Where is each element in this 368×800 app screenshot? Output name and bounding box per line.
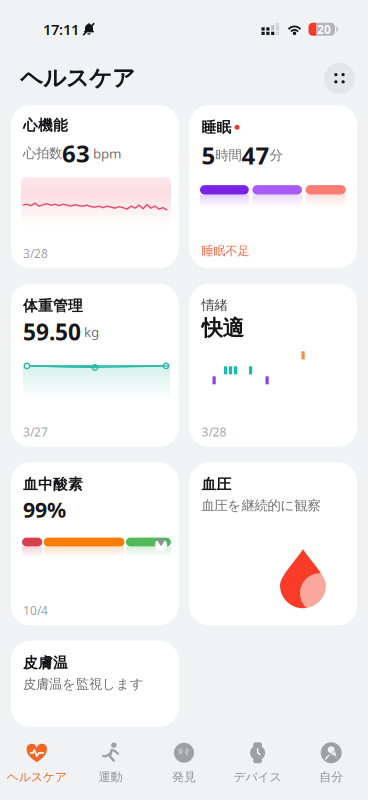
button[interactable]: 情緒 bbox=[189, 284, 357, 447]
button[interactable]: 皮膚温 bbox=[11, 641, 178, 727]
button[interactable]: 自分 bbox=[294, 734, 368, 796]
staticText: 運動 bbox=[98, 770, 122, 784]
staticText: 時間 bbox=[215, 147, 241, 163]
staticText: 心機能 bbox=[23, 116, 68, 134]
button[interactable]: デバイス bbox=[221, 734, 294, 796]
staticText: 快適 bbox=[201, 315, 243, 341]
staticText: 分 bbox=[269, 147, 282, 163]
staticText: デバイス bbox=[234, 770, 282, 784]
staticText: kg bbox=[81, 323, 99, 341]
staticText: 皮膚温 bbox=[23, 654, 68, 672]
staticText: 血中酸素 bbox=[23, 475, 83, 493]
staticText: 血圧を継続的に観察 bbox=[201, 497, 320, 514]
button[interactable]: 血中酸素 bbox=[11, 462, 178, 625]
staticText: 47 bbox=[241, 139, 269, 171]
button[interactable]: 運動 bbox=[74, 734, 147, 796]
staticText: bpm bbox=[90, 144, 121, 162]
button[interactable]: 発見 bbox=[147, 734, 221, 796]
staticText: 心拍数 bbox=[23, 145, 62, 161]
staticText: 睡眠不足 bbox=[201, 243, 249, 258]
staticText: 5 bbox=[201, 139, 215, 171]
staticText: 睡眠 bbox=[201, 118, 231, 136]
staticText: ヘルスケア bbox=[20, 64, 135, 92]
staticText: 59.50 bbox=[23, 317, 81, 347]
staticText: 3/27 bbox=[23, 424, 48, 440]
button[interactable]: More options bbox=[324, 63, 355, 94]
staticText: ヘルスケア bbox=[7, 770, 67, 784]
button[interactable]: 体重管理 bbox=[11, 284, 178, 447]
button[interactable]: 血圧 bbox=[189, 462, 357, 625]
staticText: 3/28 bbox=[201, 424, 226, 440]
staticText: 20 bbox=[317, 21, 331, 37]
staticText: 99% bbox=[23, 495, 66, 524]
staticText: 3/28 bbox=[23, 245, 48, 261]
button[interactable]: 睡眠 bbox=[189, 105, 357, 268]
button[interactable]: 心機能 bbox=[11, 105, 178, 268]
button[interactable]: ヘルスケア bbox=[0, 734, 74, 796]
staticText: 10/4 bbox=[23, 602, 48, 618]
staticText: 情緒 bbox=[201, 297, 227, 313]
staticText: 体重管理 bbox=[23, 297, 83, 315]
staticText: 63 bbox=[62, 137, 90, 169]
staticText: 自分 bbox=[319, 770, 343, 784]
staticText: 血圧 bbox=[201, 475, 231, 493]
staticText: 17:11 bbox=[43, 19, 79, 39]
staticText: 発見 bbox=[172, 770, 196, 784]
staticText: 皮膚温を監視します bbox=[23, 676, 144, 692]
